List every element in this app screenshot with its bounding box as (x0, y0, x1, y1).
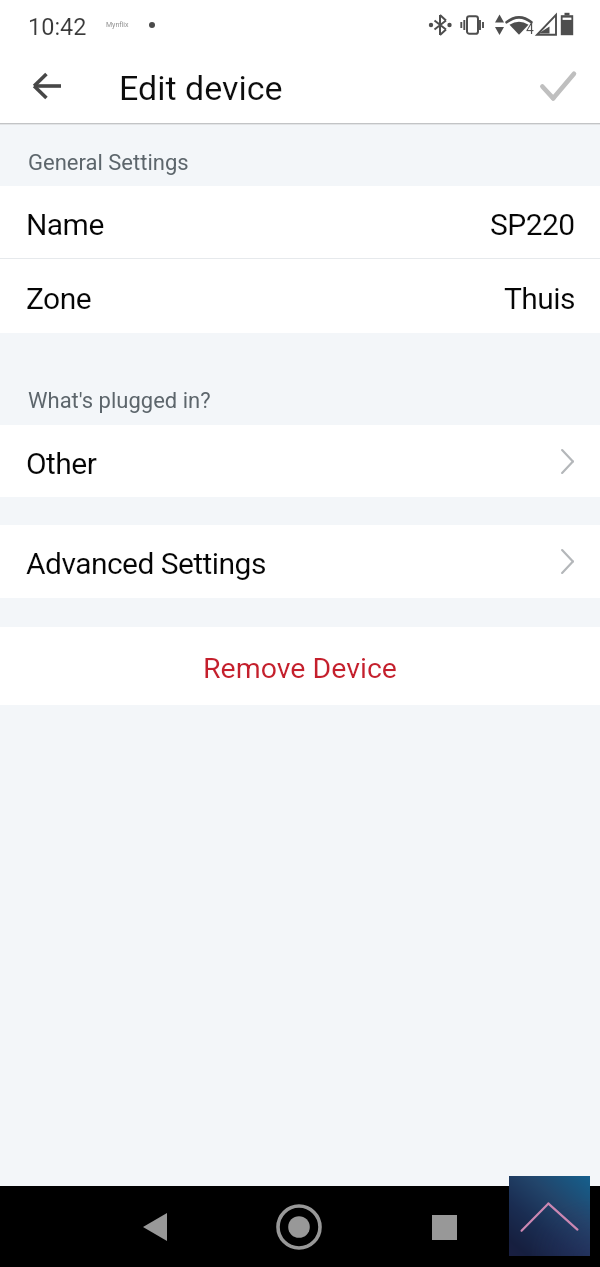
staticText: Thuis (504, 281, 575, 316)
staticText: Name (26, 207, 104, 242)
button[interactable]: Remove Device (0, 627, 600, 705)
button[interactable]: Zone (0, 259, 600, 333)
staticText: What's plugged in? (28, 388, 211, 414)
staticText: SP220 (490, 207, 575, 242)
staticText: Edit device (119, 68, 283, 108)
staticText: Advanced Settings (26, 546, 266, 581)
button[interactable]: Back (17, 56, 77, 116)
staticText: Other (26, 446, 97, 481)
button[interactable]: Home (269, 1197, 329, 1257)
button[interactable]: Advanced Settings (0, 525, 600, 598)
staticText: 4 (526, 21, 534, 37)
staticText: General Settings (28, 150, 189, 176)
button[interactable]: Other (0, 425, 600, 497)
staticText: Mynflix (106, 21, 129, 29)
button[interactable]: Name (0, 186, 600, 258)
button[interactable]: Save (528, 56, 588, 116)
staticText: 10:42 (28, 13, 87, 41)
staticText: Remove Device (203, 652, 397, 685)
staticText: Zone (26, 281, 92, 316)
button[interactable]: Back (125, 1197, 185, 1257)
button[interactable]: Recent apps (414, 1197, 474, 1257)
